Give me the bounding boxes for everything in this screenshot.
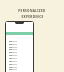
staticText: PERSONALIZED [18, 9, 46, 13]
staticText: EXPERIENCE [21, 15, 44, 19]
